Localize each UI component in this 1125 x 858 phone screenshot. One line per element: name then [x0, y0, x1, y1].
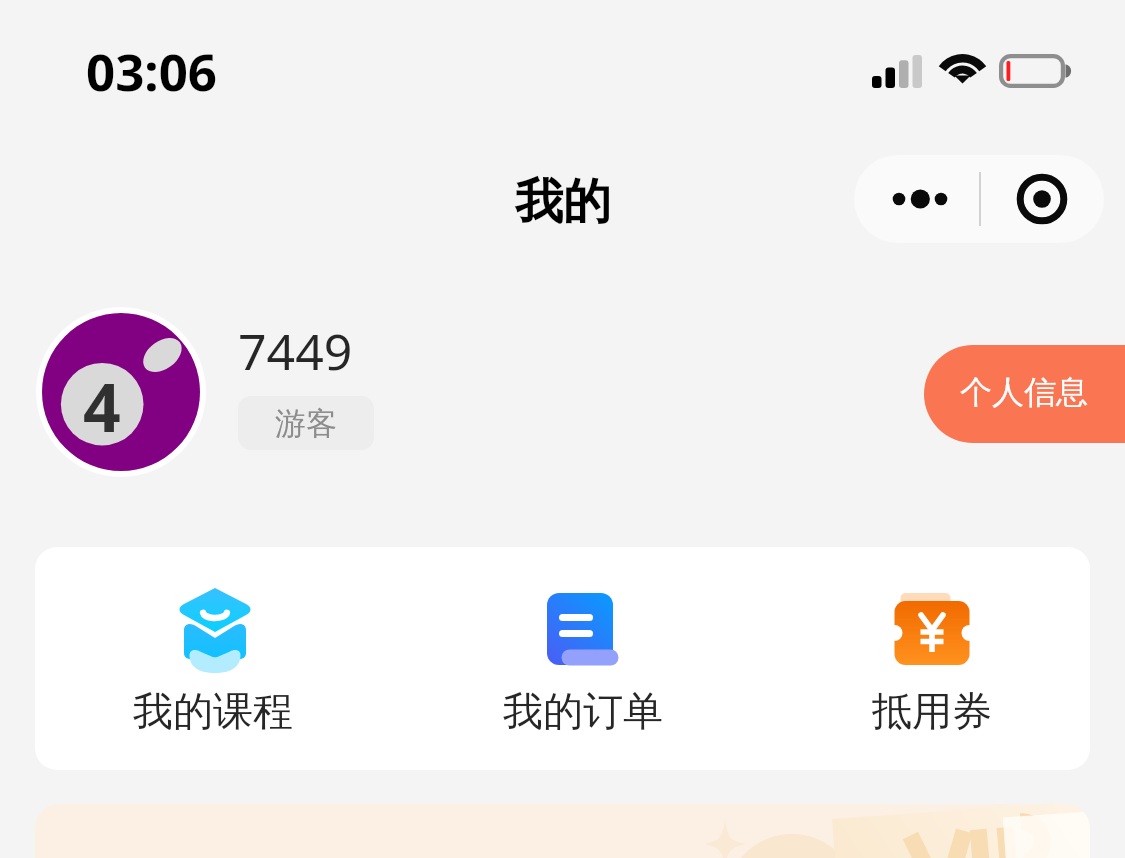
button[interactable]: 我的课程 — [103, 547, 323, 770]
button[interactable]: 7449 — [238, 317, 374, 379]
staticText: 03:06 — [86, 36, 218, 105]
button[interactable]: 游客 — [238, 396, 374, 450]
button[interactable]: Close mini program — [979, 155, 1104, 243]
button[interactable]: 个人信息 — [924, 345, 1125, 443]
staticText: 我的订单 — [503, 686, 663, 736]
button[interactable]: 我的订单 — [473, 547, 693, 770]
button[interactable]: 抵用券 — [822, 547, 1042, 770]
button[interactable]: More options — [854, 155, 979, 243]
staticText: 我的 — [515, 172, 611, 232]
staticText: 我的课程 — [133, 686, 293, 736]
button[interactable]: Profile avatar — [36, 307, 206, 477]
staticText: 游客 — [275, 404, 337, 443]
staticText: 7449 — [238, 317, 353, 379]
staticText: 4 — [83, 361, 121, 451]
staticText: 个人信息 — [960, 372, 1088, 412]
button[interactable] — [35, 804, 1090, 858]
staticText: 抵用券 — [872, 686, 992, 736]
